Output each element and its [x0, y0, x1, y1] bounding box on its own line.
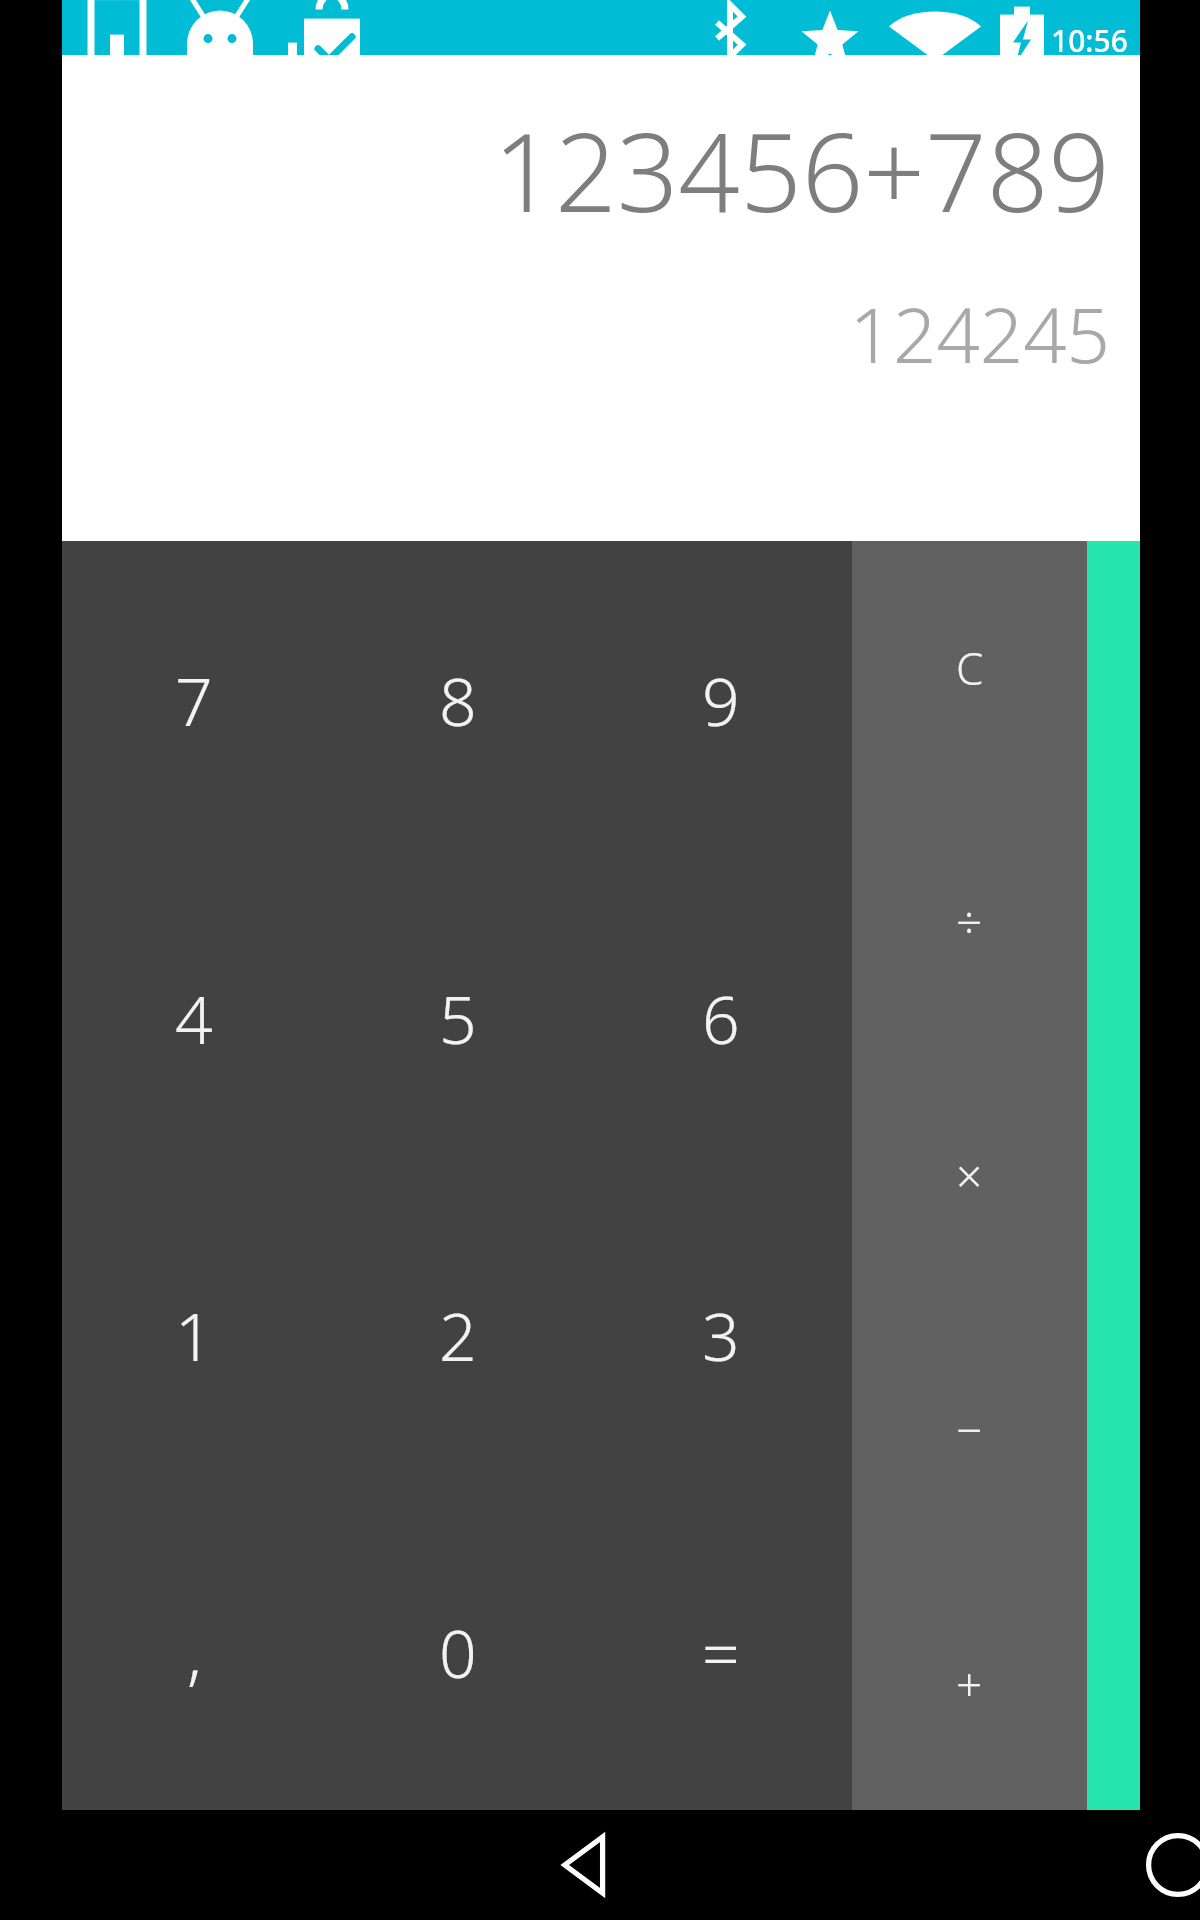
button[interactable]: 6: [589, 859, 852, 1176]
staticText: ×: [956, 1144, 983, 1207]
button[interactable]: Recents: [1060, 1810, 1200, 1920]
button[interactable]: Minus: [852, 1302, 1087, 1556]
button[interactable]: Clear: [852, 541, 1087, 794]
button[interactable]: ,: [62, 1493, 326, 1810]
staticText: 7: [175, 655, 213, 745]
staticText: 0: [439, 1607, 477, 1697]
staticText: ,: [187, 1607, 202, 1697]
staticText: =: [702, 1607, 740, 1697]
staticText: 4: [175, 973, 213, 1063]
button[interactable]: 0: [326, 1493, 589, 1810]
staticText: 6: [702, 973, 740, 1063]
staticText: 8: [439, 655, 477, 745]
button[interactable]: Divide: [852, 794, 1087, 1048]
button[interactable]: 7: [62, 541, 326, 859]
button[interactable]: 1: [62, 1176, 326, 1493]
button[interactable]: 3: [589, 1176, 852, 1493]
staticText: 2: [439, 1290, 477, 1380]
button[interactable]: Multiply: [852, 1048, 1087, 1302]
staticText: 10:56: [1051, 20, 1128, 61]
button[interactable]: 8: [326, 541, 589, 859]
button[interactable]: 2: [326, 1176, 589, 1493]
button[interactable]: 9: [589, 541, 852, 859]
staticText: ÷: [956, 890, 983, 953]
staticText: 5: [439, 973, 477, 1063]
button[interactable]: =: [589, 1493, 852, 1810]
staticText: 9: [702, 655, 740, 745]
staticText: 1: [175, 1290, 213, 1380]
staticText: 123456+789: [493, 97, 1110, 244]
button[interactable]: 4: [62, 859, 326, 1176]
button[interactable]: Plus: [852, 1556, 1087, 1810]
staticText: 124245: [849, 282, 1110, 386]
staticText: 3: [702, 1290, 740, 1380]
staticText: C: [956, 638, 984, 698]
staticText: −: [956, 1398, 983, 1461]
staticText: +: [956, 1652, 983, 1715]
button[interactable]: 5: [326, 859, 589, 1176]
button[interactable]: Back: [520, 1810, 660, 1920]
